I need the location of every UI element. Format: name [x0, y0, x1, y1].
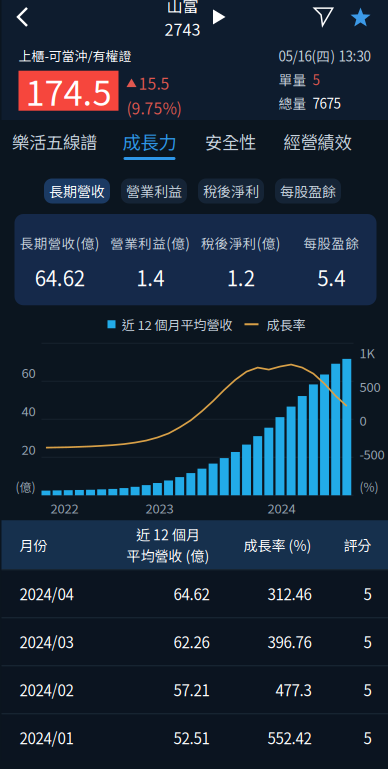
staticText: 評分 — [343, 535, 371, 555]
staticText: 20 — [21, 440, 35, 458]
staticText: 552.42 — [267, 727, 311, 749]
staticText: 396.76 — [267, 631, 311, 653]
staticText: 2743 — [164, 17, 200, 40]
staticText: 5.4 — [317, 262, 345, 292]
staticText: 57.21 — [173, 679, 209, 701]
staticText: 500 — [359, 377, 380, 396]
staticText: 2024/03 — [19, 631, 73, 653]
staticText: 長期營收(億) — [20, 233, 100, 252]
staticText: 成長率 — [266, 315, 305, 334]
staticText: 60 — [21, 363, 35, 382]
staticText: 5 — [363, 631, 371, 653]
staticText: 每股盈餘 — [303, 233, 359, 252]
staticText: 2024/01 — [19, 727, 73, 749]
staticText: 1.2 — [227, 262, 255, 292]
staticText: 5 — [363, 679, 371, 701]
staticText: 2024 — [267, 498, 295, 517]
staticText: 7675 — [312, 93, 340, 112]
staticText: 2024/04 — [19, 583, 73, 605]
staticText: 近 12 個月平均營收 — [121, 315, 232, 334]
button[interactable]: 營業利益 — [121, 178, 187, 203]
button[interactable]: 2024/02 — [1, 665, 388, 713]
staticText: 經營績效 — [283, 129, 351, 154]
staticText: 稅後淨利 — [203, 181, 259, 201]
staticText: 52.51 — [173, 727, 209, 749]
staticText: 2023 — [145, 498, 173, 517]
staticText: 安全性 — [205, 129, 256, 154]
staticText: 營業利益 — [126, 181, 182, 201]
staticText: 山富 — [166, 0, 198, 17]
button[interactable]: 長期營收 — [44, 178, 110, 203]
staticText: 每股盈餘 — [280, 181, 336, 201]
staticText: 單量 — [278, 69, 306, 89]
staticText: 40 — [21, 401, 35, 420]
button[interactable]: 安全性 — [191, 120, 269, 168]
staticText: 174.5 — [25, 66, 111, 116]
staticText: 5 — [363, 583, 371, 605]
staticText: 1K — [359, 343, 374, 362]
staticText: 0 — [359, 411, 366, 429]
staticText: 1.4 — [136, 262, 164, 292]
staticText: 5 — [312, 69, 319, 89]
staticText: -500 — [359, 444, 384, 463]
button[interactable]: 樂活五線譜 — [1, 120, 107, 168]
staticText: 64.62 — [35, 262, 85, 292]
staticText: (9.75%) — [126, 96, 181, 119]
staticText: 2024/02 — [19, 679, 73, 701]
button[interactable]: 經營績效 — [269, 120, 365, 168]
button[interactable]: 稅後淨利 — [198, 178, 264, 203]
staticText: 62.26 — [173, 631, 209, 653]
staticText: 2022 — [50, 498, 78, 517]
button[interactable]: 2024/01 — [1, 713, 388, 761]
staticText: 樂活五線譜 — [12, 129, 97, 154]
staticText: 月份 — [19, 535, 47, 555]
staticText: 64.62 — [173, 583, 209, 605]
button[interactable]: Share — [313, 7, 333, 27]
button[interactable]: Back — [1, 0, 41, 36]
staticText: 477.3 — [275, 679, 311, 701]
button[interactable]: 2024/03 — [1, 617, 388, 665]
staticText: 營業利益(億) — [110, 233, 190, 252]
button[interactable]: 成長力 — [107, 120, 191, 168]
staticText: 稅後淨利(億) — [201, 233, 281, 252]
staticText: (%) — [359, 478, 378, 495]
staticText: 上櫃-可當沖/有權證 — [18, 46, 131, 65]
staticText: 總量 — [278, 93, 306, 112]
button[interactable]: 每股盈餘 — [275, 178, 341, 203]
staticText: 5 — [363, 727, 371, 749]
staticText: 近 12 個月 — [136, 524, 200, 544]
button[interactable]: Play — [212, 9, 226, 25]
staticText: 成長力 — [122, 128, 176, 155]
staticText: 05/16(四) 13:30 — [278, 46, 370, 65]
staticText: 成長率 (%) — [243, 535, 311, 555]
staticText: 15.5 — [138, 72, 169, 94]
staticText: 長期營收 — [49, 181, 105, 201]
staticText: 平均營收 (億) — [126, 545, 209, 566]
staticText: (億) — [15, 478, 35, 495]
button[interactable]: 2024/04 — [1, 569, 388, 617]
button[interactable]: Favorite — [349, 7, 371, 27]
staticText: 312.46 — [267, 583, 311, 605]
